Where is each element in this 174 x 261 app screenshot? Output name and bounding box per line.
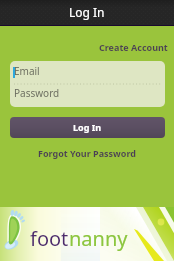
staticText: Email bbox=[14, 64, 40, 78]
button[interactable]: Forgot Your Password bbox=[30, 144, 144, 162]
button[interactable]: Create Account bbox=[91, 37, 174, 57]
staticText: nanny bbox=[69, 225, 128, 252]
staticText: Log In bbox=[69, 4, 105, 20]
staticText: foot bbox=[30, 225, 69, 252]
staticText: Create Account bbox=[99, 41, 168, 53]
staticText: Password bbox=[14, 86, 60, 100]
staticText: Forgot Your Password bbox=[38, 147, 136, 159]
button[interactable]: Log In bbox=[10, 117, 165, 138]
button[interactable]: Password bbox=[10, 84, 165, 106]
button[interactable]: Email bbox=[10, 61, 165, 83]
staticText: Log In bbox=[73, 121, 102, 133]
